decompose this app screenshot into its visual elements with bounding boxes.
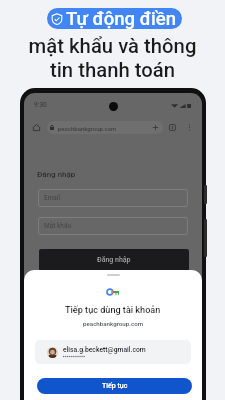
staticText: 9:30: [34, 101, 47, 109]
other: Tabs: [169, 124, 176, 131]
other: New tab: [152, 124, 159, 131]
staticText: Tiếp tục dùng tài khoản: [65, 305, 161, 316]
staticText: Tự động điền: [66, 8, 177, 29]
button[interactable]: Email: [38, 189, 188, 207]
button[interactable]: elisa.g.beckett@gmail.com: [35, 340, 191, 364]
button[interactable]: Đăng nhập: [39, 249, 189, 271]
staticText: Email: [44, 194, 61, 202]
staticText: mật khẩu và thông tin thanh toán: [0, 34, 225, 82]
button[interactable]: Tiếp tục: [37, 378, 192, 394]
button[interactable]: Autofill shield: [47, 8, 182, 29]
staticText: elisa.g.beckett@gmail.com: [63, 346, 146, 354]
other: More options: [188, 124, 191, 131]
staticText: Đăng nhập: [97, 256, 131, 264]
staticText: peachbankgroup.com: [83, 320, 144, 327]
other: Autofill shield: [51, 13, 63, 25]
other: Home: [33, 124, 40, 131]
staticText: Tiếp tục: [102, 382, 128, 390]
other: Google Password Manager: [107, 289, 119, 295]
staticText: peachbankgroup.com: [58, 125, 117, 132]
button[interactable]: Mật khẩu: [38, 217, 188, 235]
staticText: Mật khẩu: [44, 222, 72, 230]
staticText: Đăng nhập: [37, 170, 76, 179]
